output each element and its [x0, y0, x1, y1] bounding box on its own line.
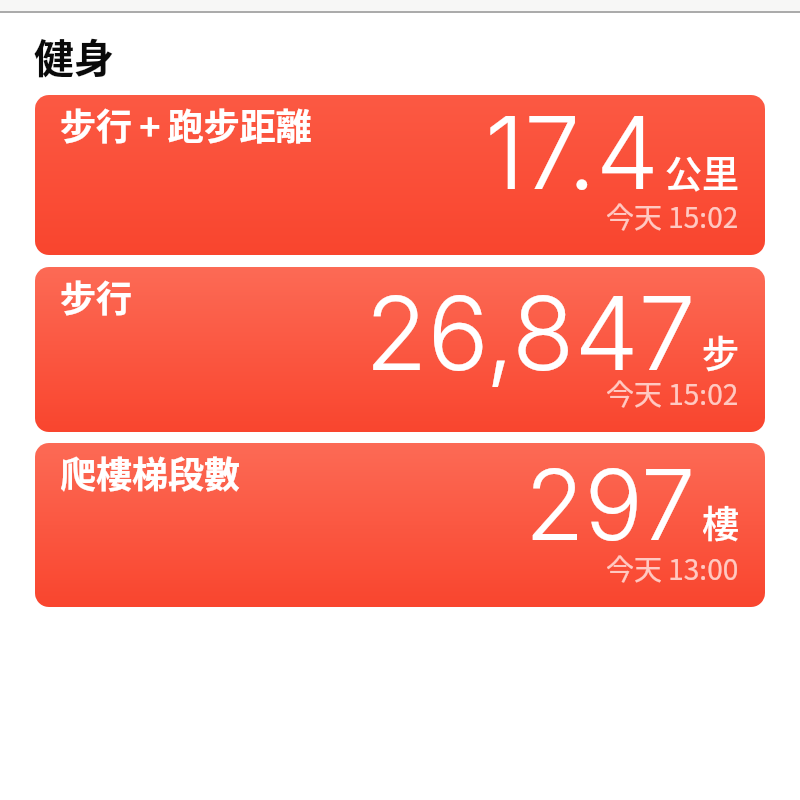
staticText: 297 — [525, 446, 696, 563]
staticText: 17.4 — [485, 95, 659, 213]
staticText: 今天 15:02 — [606, 196, 739, 237]
button[interactable]: 爬樓梯段數 — [35, 443, 765, 607]
staticText: 公里 — [665, 145, 739, 199]
staticText: 今天 13:00 — [606, 548, 739, 589]
staticText: 健身 — [34, 27, 114, 85]
staticText: 步 — [702, 325, 739, 379]
staticText: 26,847 — [365, 271, 696, 394]
staticText: 今天 15:02 — [606, 373, 739, 414]
staticText: 步行 + 跑步距離 — [60, 98, 312, 150]
staticText: 爬樓梯段數 — [60, 446, 241, 498]
staticText: 樓 — [702, 495, 739, 549]
button[interactable]: 步行 — [35, 267, 765, 432]
button[interactable]: 步行 + 跑步距離 — [35, 95, 765, 255]
staticText: 步行 — [60, 270, 133, 322]
